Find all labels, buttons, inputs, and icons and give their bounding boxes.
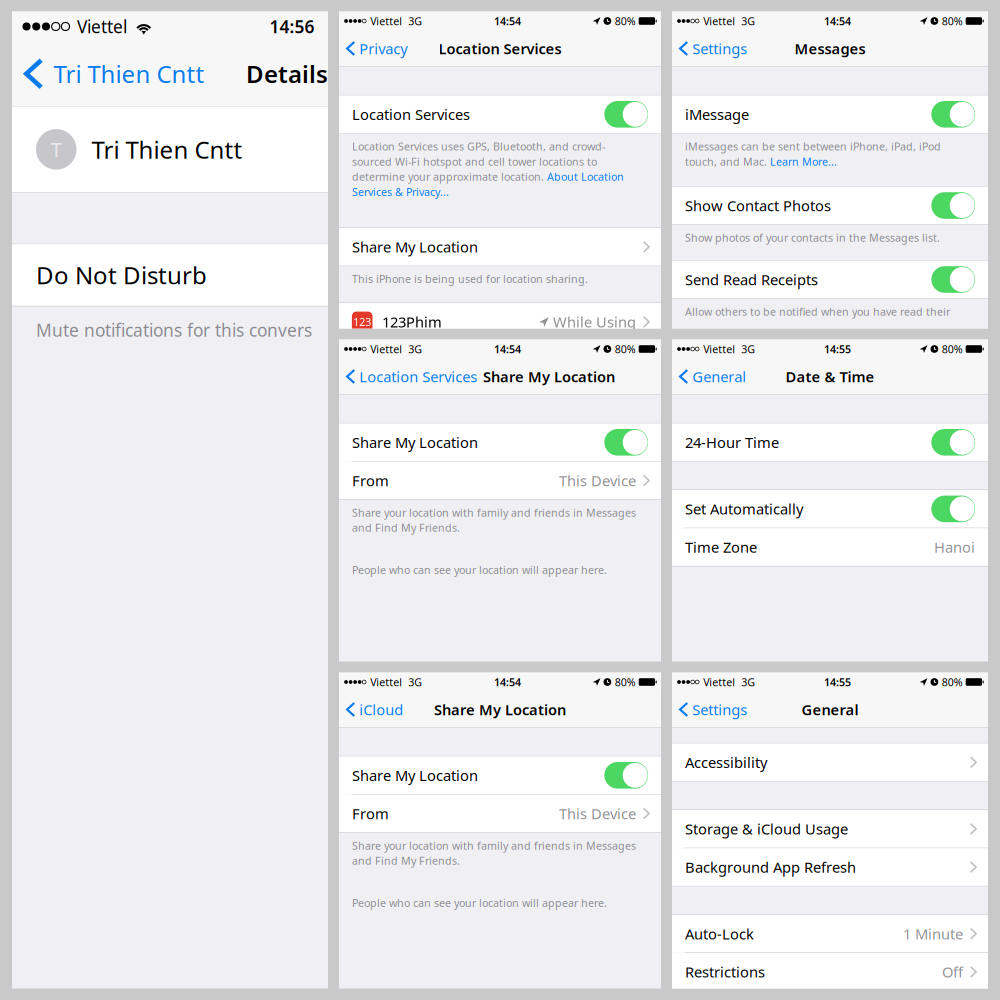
button[interactable]: Show Contact Photos [672,187,988,224]
staticText: Viettel [703,342,735,356]
staticText: Learn More... [770,154,837,169]
staticText: Services & Privacy... [352,185,449,199]
button[interactable]: General [672,358,750,394]
staticText: Location Services [438,39,561,58]
staticText: General [801,700,858,719]
staticText: Viettel [703,675,735,689]
staticText: determine your approximate location. [352,170,547,184]
staticText: Share My Location [352,433,478,452]
button[interactable]: 24-Hour Time [672,423,988,461]
button[interactable]: Restrictions [672,953,988,991]
staticText: Privacy [359,39,407,58]
staticText: Viettel [370,675,402,689]
staticText: Time Zone [685,537,757,557]
button[interactable]: From [339,795,661,832]
staticText: iMessage [685,105,749,124]
staticText: Allow others to be notified when you hav… [685,304,950,319]
staticText: Location Services [359,367,477,386]
staticText: 3G [408,342,422,356]
staticText: People who can see your location will ap… [352,563,607,577]
staticText: 14:54 [494,14,521,28]
staticText: People who can see your location will ap… [352,896,607,910]
staticText: Set Automatically [685,499,803,519]
button[interactable]: iCloud [339,691,407,727]
staticText: Tri Thien Cntt [53,58,204,90]
staticText: This Device [559,471,636,490]
button[interactable]: Share My Location [339,423,661,461]
staticText: 14:56 [269,15,314,38]
staticText: Off [942,962,963,982]
button[interactable]: Accessibility [672,743,988,781]
button[interactable]: Auto-Lock [672,915,988,952]
staticText: Share My Location [483,367,615,386]
staticText: Do Not Disturb [36,259,207,291]
staticText: 80% [615,675,636,689]
button[interactable]: Tri Thien Cntt [12,41,204,106]
staticText: Date & Time [785,367,874,386]
button[interactable]: Location Services [339,358,481,394]
staticText: Share My Location [352,237,478,257]
staticText: General [692,367,746,386]
staticText: 14:54 [494,342,521,356]
staticText: Mute notifications for this convers [36,318,312,341]
staticText: 3G [408,675,422,689]
staticText: 14:55 [824,342,851,356]
button[interactable]: Storage & iCloud Usage [672,810,988,848]
button[interactable]: Send Read Receipts [672,261,988,298]
button[interactable]: Location Services [339,95,661,133]
staticText: About Location [547,170,624,184]
staticText: T [51,136,62,163]
staticText: Background App Refresh [685,857,856,877]
staticText: Viettel [77,15,127,38]
staticText: Hanoi [934,537,975,557]
staticText: Viettel [370,342,402,356]
staticText: Share your location with family and frie… [352,838,636,853]
staticText: 14:54 [824,14,851,28]
staticText: Storage & iCloud Usage [685,819,848,839]
staticText: Settings [692,700,747,719]
staticText: Location Services [352,105,470,124]
staticText: Share your location with family and frie… [352,505,636,520]
button[interactable]: Settings [672,691,751,727]
button[interactable]: Background App Refresh [672,848,988,886]
button[interactable]: Share My Location [339,756,661,794]
staticText: Share My Location [434,700,566,719]
staticText: 123Phim [382,312,442,332]
staticText: and Find My Friends. [352,854,460,868]
button[interactable]: 123 [339,303,661,341]
staticText: 80% [615,342,636,356]
staticText: 3G [741,675,755,689]
staticText: Show photos of your contacts in the Mess… [685,230,940,245]
staticText: iCloud [359,700,403,719]
staticText: 80% [942,675,963,689]
staticText: From [352,804,389,823]
staticText: 1 Minute [903,924,963,943]
button[interactable]: Settings [672,30,751,66]
staticText: touch, and Mac. [685,154,770,169]
staticText: Location Services uses GPS, Bluetooth, a… [352,139,605,153]
staticText: Details [246,58,328,90]
staticText: Accessibility [685,753,767,772]
staticText: Auto-Lock [685,924,754,943]
staticText: This Device [559,804,636,823]
button[interactable]: From [339,462,661,499]
staticText: 80% [942,342,963,356]
button[interactable]: Privacy [339,30,411,66]
staticText: Viettel [370,14,402,28]
button[interactable]: Set Automatically [672,490,988,528]
staticText: Viettel [703,14,735,28]
button[interactable]: Share My Location [339,228,661,266]
staticText: 24-Hour Time [685,433,779,452]
staticText: While Using [553,312,636,332]
staticText: 123 [353,315,371,329]
staticText: Show Contact Photos [685,196,831,215]
staticText: 3G [408,14,422,28]
staticText: 3G [741,342,755,356]
button[interactable]: iMessage [672,95,988,133]
staticText: From [352,471,389,490]
staticText: Send Read Receipts [685,270,818,289]
staticText: Restrictions [685,962,765,982]
staticText: 14:55 [824,675,851,689]
staticText: 80% [942,14,963,28]
staticText: Settings [692,39,747,58]
